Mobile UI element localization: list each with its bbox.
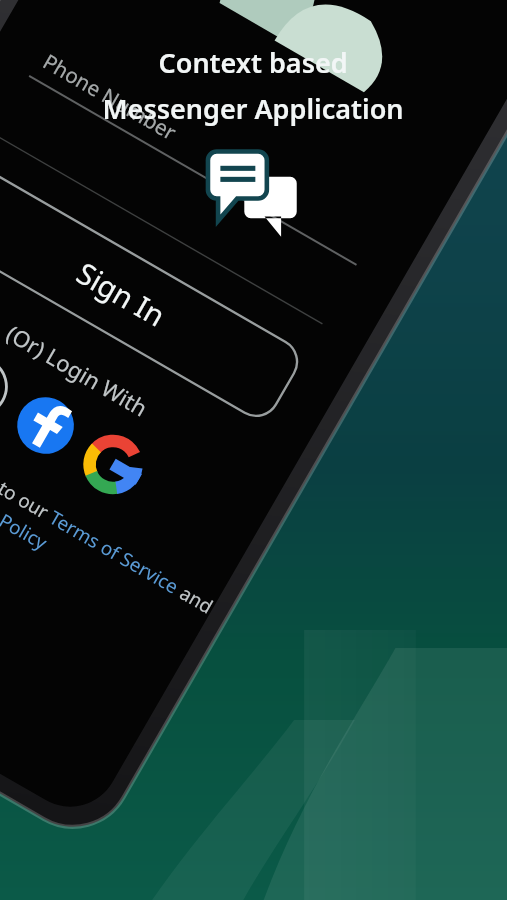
button[interactable]: Context based Messenger Application [0, 0, 507, 900]
